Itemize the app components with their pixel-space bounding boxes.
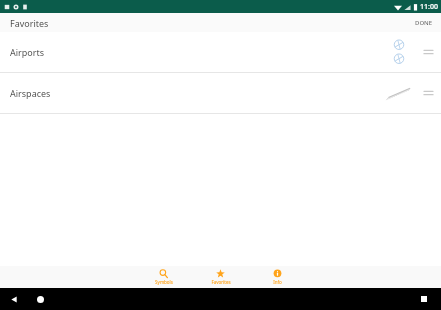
button[interactable]: Reorder Airspaces xyxy=(421,82,435,104)
button[interactable]: Home xyxy=(33,292,47,306)
staticText: Favorites xyxy=(10,17,49,29)
button[interactable]: Info xyxy=(249,266,306,288)
button[interactable]: Airports xyxy=(0,32,441,72)
button[interactable]: Favorites xyxy=(192,266,249,288)
staticText: Favorites xyxy=(211,279,231,285)
staticText: Symbols xyxy=(155,279,173,285)
staticText: DONE xyxy=(415,19,433,27)
staticText: Info xyxy=(273,279,282,285)
button[interactable]: Symbols xyxy=(135,266,192,288)
staticText: 11:00 xyxy=(420,2,438,12)
button[interactable]: Reorder Airports xyxy=(421,41,435,63)
button[interactable]: Airspaces xyxy=(0,73,441,113)
button[interactable]: DONE xyxy=(407,13,441,32)
button[interactable]: Back xyxy=(7,292,21,306)
button[interactable]: Recent apps xyxy=(417,292,431,306)
staticText: Airspaces xyxy=(10,87,51,99)
staticText: Airports xyxy=(10,46,45,58)
